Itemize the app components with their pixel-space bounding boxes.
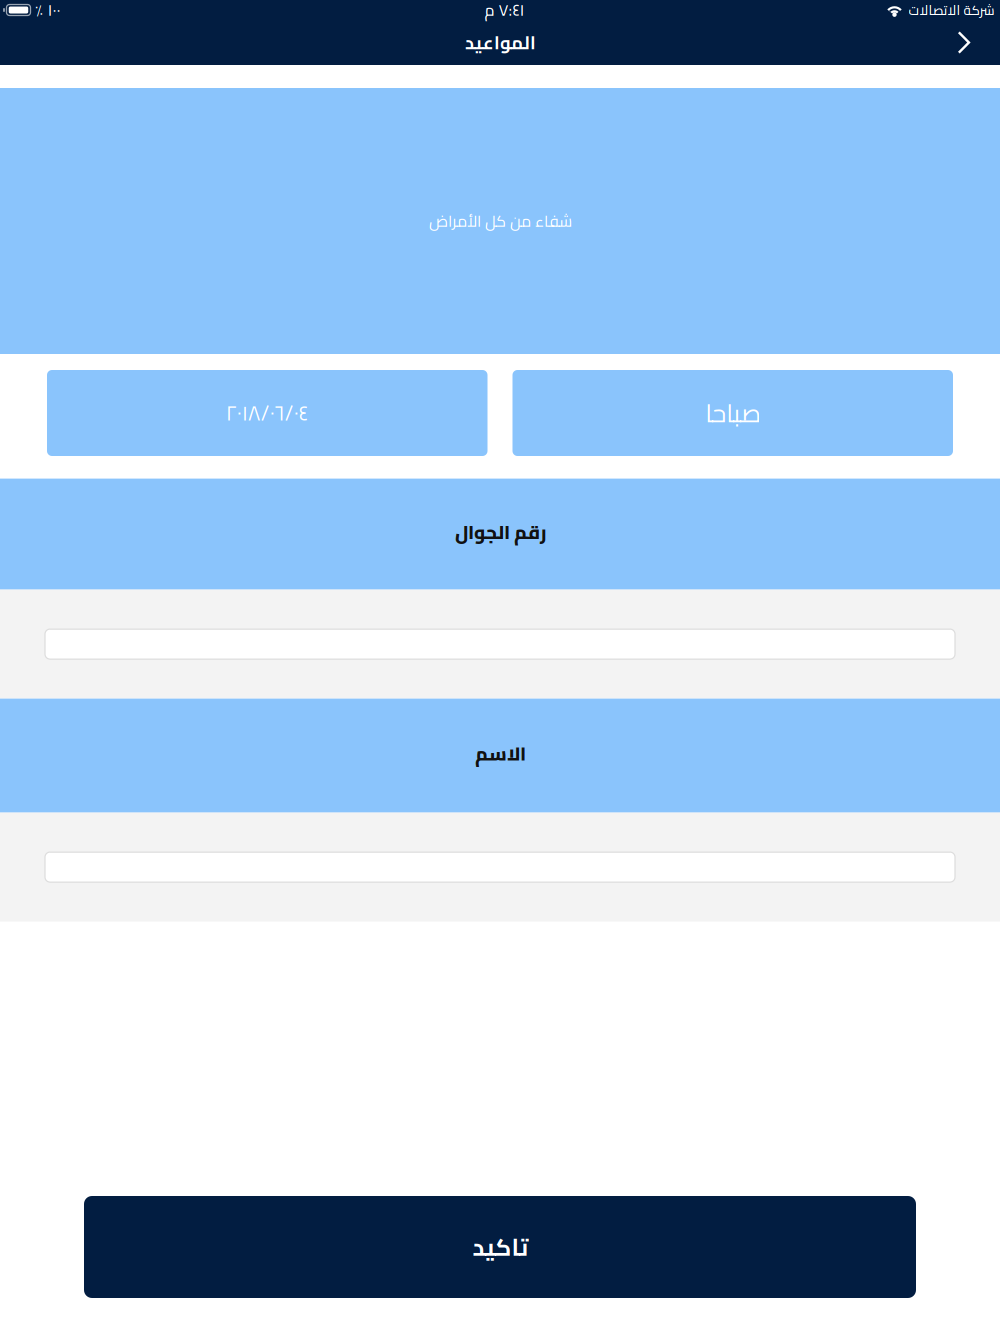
button[interactable]: ٢٠١٨/٠٦/٠٤ (47, 370, 487, 456)
staticText: الاسم (474, 736, 525, 771)
staticText: ٪ ١٠٠ (34, 0, 60, 25)
button[interactable]: الاسم (0, 852, 1000, 882)
staticText: رقم الجوال (454, 514, 545, 550)
staticText: ٧:٤١ م (484, 0, 524, 25)
staticText: تاكيد (472, 1224, 528, 1269)
button[interactable]: رجوع (942, 20, 1000, 65)
button[interactable]: صباحا (512, 370, 953, 456)
button[interactable]: رقم الجوال (0, 629, 1000, 659)
button[interactable]: تاكيد (84, 1196, 916, 1298)
staticText: شفاء من كل الأمراض (428, 206, 571, 236)
staticText: المواعيد (464, 25, 535, 60)
staticText: شركة الاتصالات (908, 0, 994, 22)
staticText: ٢٠١٨/٠٦/٠٤ (226, 394, 309, 432)
staticText: صباحا (705, 389, 761, 437)
